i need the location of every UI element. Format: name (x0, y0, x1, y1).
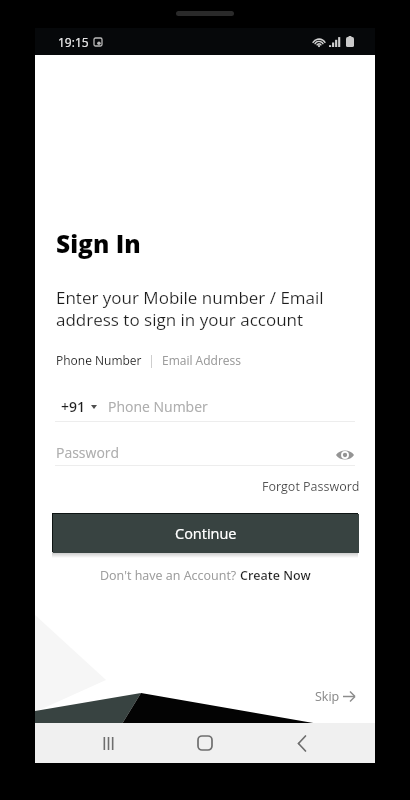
staticText: Skip (315, 688, 340, 705)
staticText: Sign In (56, 227, 141, 260)
staticText: 19:15 (58, 34, 89, 50)
button[interactable]: Email Address (162, 352, 241, 368)
button[interactable]: Skip (315, 688, 355, 705)
staticText: Continue (175, 524, 237, 544)
staticText: Password (56, 443, 120, 462)
button[interactable]: Create Now (240, 567, 311, 584)
staticText: +91 (61, 397, 86, 416)
staticText: Forgot Password (262, 478, 360, 495)
staticText: | (142, 352, 162, 368)
button[interactable]: Home (181, 723, 229, 763)
staticText: Phone Number (108, 397, 208, 416)
staticText: Enter your Mobile number / Email address… (56, 286, 324, 331)
staticText: Don't have an Account? (100, 567, 240, 584)
button[interactable]: Show password (331, 442, 359, 468)
button[interactable]: Continue (53, 514, 359, 553)
button[interactable]: Back (278, 723, 326, 763)
button[interactable]: Phone Number (56, 352, 142, 368)
button[interactable]: Recents (84, 723, 132, 763)
button[interactable]: Forgot Password (262, 478, 360, 495)
